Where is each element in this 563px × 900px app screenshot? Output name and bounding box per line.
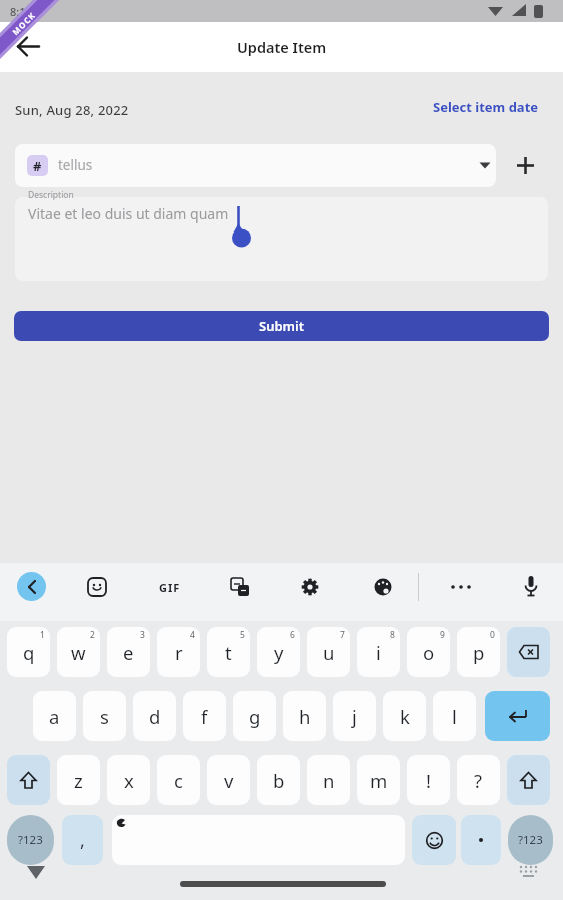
- staticText: Update Item: [237, 37, 327, 57]
- staticText: s: [100, 704, 109, 729]
- staticText: c: [174, 768, 183, 793]
- button[interactable]: c: [157, 755, 200, 805]
- staticText: y: [274, 640, 284, 665]
- button[interactable]: [17, 572, 46, 601]
- button[interactable]: [7, 755, 50, 805]
- button[interactable]: #: [15, 144, 496, 187]
- staticText: Sun, Aug 28, 2022: [15, 101, 129, 119]
- button[interactable]: Submit: [14, 311, 549, 341]
- staticText: r: [175, 640, 183, 665]
- staticText: ?123: [18, 832, 43, 848]
- button[interactable]: o: [407, 627, 450, 677]
- button[interactable]: u: [307, 627, 350, 677]
- staticText: 9: [440, 629, 445, 641]
- button[interactable]: h: [283, 691, 326, 741]
- button[interactable]: f: [183, 691, 226, 741]
- staticText: ?: [474, 768, 483, 793]
- staticText: q: [23, 640, 35, 665]
- button[interactable]: g: [233, 691, 276, 741]
- staticText: Vitae et leo duis ut diam quam: [28, 204, 229, 223]
- staticText: h: [299, 704, 311, 729]
- staticText: m: [370, 768, 388, 793]
- staticText: 5: [240, 629, 245, 641]
- button[interactable]: ?123: [7, 815, 54, 865]
- button[interactable]: q: [7, 627, 50, 677]
- button[interactable]: [412, 815, 456, 865]
- staticText: 7: [340, 629, 345, 641]
- button[interactable]: n: [307, 755, 350, 805]
- staticText: Select item date: [433, 98, 539, 116]
- staticText: GIF: [159, 580, 181, 595]
- button[interactable]: j: [333, 691, 376, 741]
- button[interactable]: i: [357, 627, 400, 677]
- staticText: o: [423, 640, 435, 665]
- button[interactable]: ?: [457, 755, 500, 805]
- button[interactable]: z: [57, 755, 100, 805]
- staticText: j: [352, 704, 357, 729]
- staticText: z: [74, 768, 83, 793]
- button[interactable]: [447, 576, 475, 598]
- staticText: ,: [80, 828, 85, 853]
- button[interactable]: [485, 691, 550, 741]
- button[interactable]: k: [383, 691, 426, 741]
- button[interactable]: Select item date: [411, 96, 539, 118]
- staticText: k: [400, 704, 410, 729]
- button[interactable]: [507, 755, 550, 805]
- staticText: Submit: [259, 317, 305, 335]
- button[interactable]: e: [107, 627, 150, 677]
- staticText: 6: [290, 629, 295, 641]
- button[interactable]: [15, 197, 548, 281]
- staticText: i: [376, 640, 381, 665]
- staticText: 1: [40, 629, 45, 641]
- button[interactable]: ?123: [508, 815, 553, 865]
- button[interactable]: m: [357, 755, 400, 805]
- button[interactable]: [86, 576, 108, 598]
- staticText: MOCK: [10, 9, 38, 37]
- button[interactable]: ,: [62, 815, 103, 865]
- button[interactable]: [112, 815, 405, 865]
- staticText: Description: [28, 189, 74, 201]
- staticText: w: [71, 640, 86, 665]
- button[interactable]: [17, 36, 40, 57]
- button[interactable]: a: [33, 691, 76, 741]
- button[interactable]: [461, 815, 501, 865]
- staticText: 0: [490, 629, 495, 641]
- staticText: x: [124, 768, 134, 793]
- staticText: n: [323, 768, 335, 793]
- button[interactable]: [229, 576, 251, 598]
- staticText: d: [149, 704, 161, 729]
- button[interactable]: [299, 576, 321, 598]
- staticText: u: [323, 640, 335, 665]
- button[interactable]: y: [257, 627, 300, 677]
- staticText: 8: [390, 629, 395, 641]
- button[interactable]: [507, 627, 550, 677]
- staticText: v: [224, 768, 234, 793]
- staticText: 8:12: [10, 4, 32, 19]
- button[interactable]: !: [407, 755, 450, 805]
- staticText: p: [473, 640, 485, 665]
- staticText: 2: [90, 629, 95, 641]
- staticText: l: [452, 704, 457, 729]
- button[interactable]: r: [157, 627, 200, 677]
- button[interactable]: GIF: [152, 576, 188, 598]
- button[interactable]: b: [257, 755, 300, 805]
- button[interactable]: [507, 147, 543, 183]
- staticText: !: [426, 768, 431, 793]
- button[interactable]: d: [133, 691, 176, 741]
- button[interactable]: p: [457, 627, 500, 677]
- button[interactable]: w: [57, 627, 100, 677]
- button[interactable]: s: [83, 691, 126, 741]
- button[interactable]: x: [107, 755, 150, 805]
- staticText: 3: [140, 629, 145, 641]
- button[interactable]: [520, 572, 542, 602]
- button[interactable]: v: [207, 755, 250, 805]
- staticText: #: [33, 157, 42, 175]
- staticText: ?123: [518, 832, 543, 848]
- button[interactable]: t: [207, 627, 250, 677]
- staticText: a: [49, 704, 60, 729]
- button[interactable]: [372, 576, 394, 598]
- button[interactable]: l: [433, 691, 476, 741]
- staticText: f: [201, 704, 208, 729]
- staticText: t: [225, 640, 232, 665]
- staticText: g: [249, 704, 261, 729]
